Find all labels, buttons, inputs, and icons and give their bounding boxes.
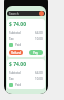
staticText: Paid: [15, 83, 22, 87]
button[interactable]: Search: [7, 11, 45, 16]
staticText: Paid: [15, 43, 22, 47]
staticText: Pay: [33, 51, 39, 55]
staticText: Subtotal: [9, 31, 21, 35]
staticText: $ 74.00: [9, 21, 27, 28]
staticText: Subtotal: [9, 71, 21, 75]
staticText: Search: [9, 12, 19, 16]
staticText: Tax: [9, 77, 14, 81]
staticText: 10.00: [35, 37, 43, 41]
staticText: 10.00: [35, 77, 43, 81]
staticText: Tax: [9, 37, 14, 41]
button[interactable]: Pay: [29, 50, 43, 55]
staticText: 64.00: [35, 71, 43, 75]
staticText: $ 74.00: [9, 61, 27, 68]
button[interactable]: $ 74.00: [7, 19, 45, 57]
button[interactable]: Profile: [39, 11, 44, 16]
button[interactable]: Refund: [9, 50, 23, 55]
button[interactable]: $ 74.00: [7, 59, 45, 89]
staticText: 64.00: [35, 31, 43, 35]
staticText: Refund: [11, 51, 22, 55]
